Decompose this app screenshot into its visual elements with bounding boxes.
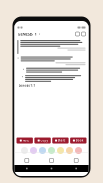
button[interactable]: Highlight colour 1 [21,147,28,154]
button[interactable]: Library [14,156,39,165]
staticText: Note [23,139,30,142]
staticText: GENESIS [17,31,32,37]
button[interactable]: Profile [64,156,88,165]
button[interactable]: More options [81,32,85,36]
button[interactable]: Search [75,32,79,36]
button[interactable]: Highlight colour 5 [57,147,64,154]
button[interactable]: Highlight colour 4 [48,147,55,154]
button[interactable]: Home [39,165,64,172]
button[interactable]: Highlight colour 2 [30,147,37,154]
staticText: Book [76,139,84,142]
button[interactable]: Back [14,165,39,172]
button[interactable]: Note [16,137,33,143]
button[interactable]: Copy [34,137,51,143]
button[interactable]: Recents [64,165,88,172]
button[interactable]: Read [39,156,64,165]
staticText: v [38,32,39,36]
button[interactable]: Highlight colour 7 [75,147,82,154]
staticText: Copy [40,139,47,142]
staticText: Genesis 1:1 [18,84,35,87]
button[interactable]: Highlight colour 3 [39,147,46,154]
button[interactable]: GENESIS [17,31,39,37]
button[interactable]: Book [70,137,86,143]
staticText: 1 [34,31,36,37]
staticText: Share [58,139,66,142]
button[interactable]: Highlight colour 6 [66,147,73,154]
button[interactable]: Share [52,137,69,143]
